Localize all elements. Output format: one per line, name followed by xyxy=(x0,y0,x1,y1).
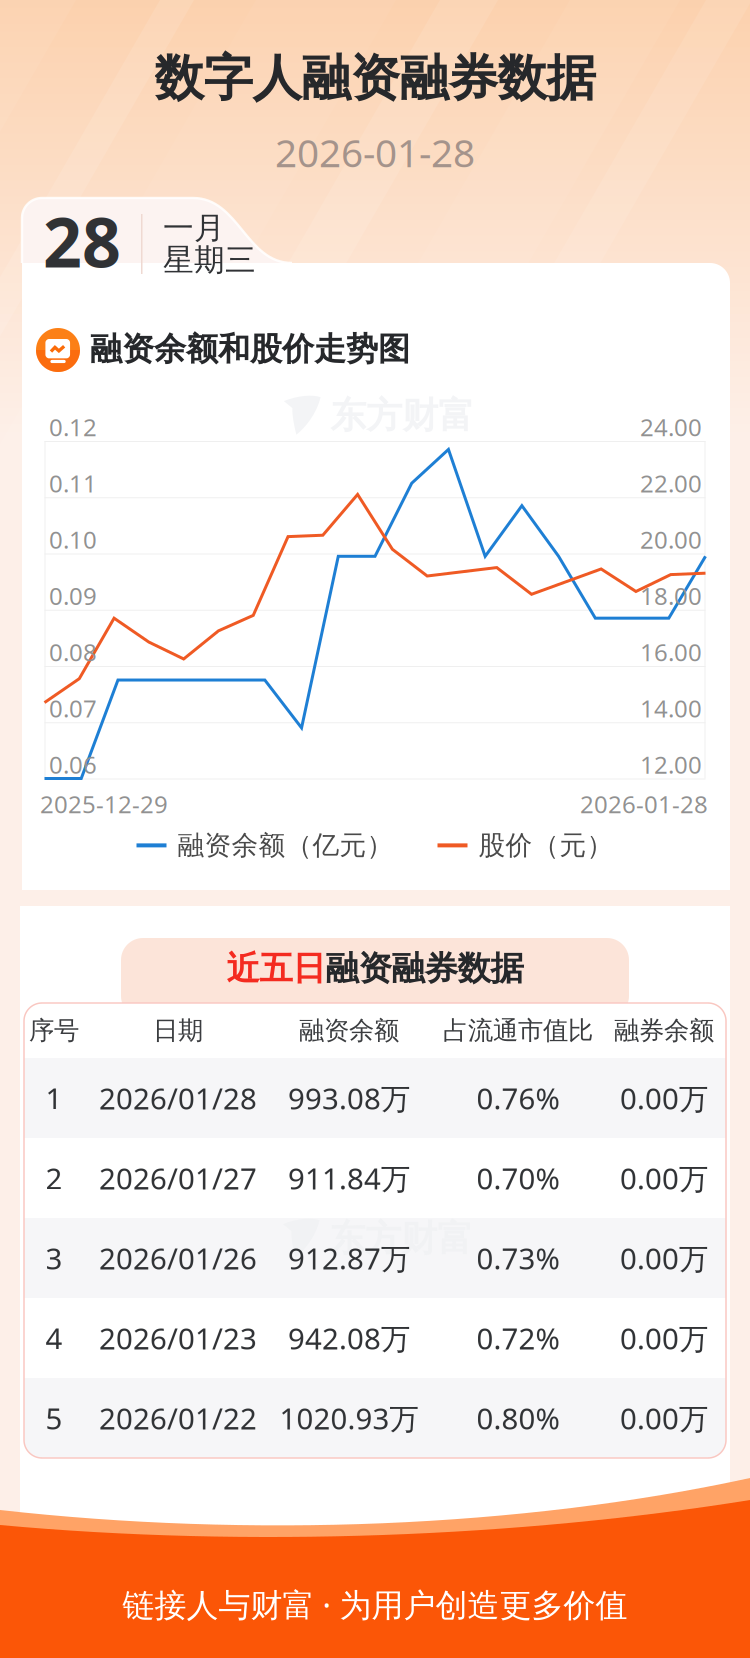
staticText: 0.11 xyxy=(49,467,97,499)
staticText: 0.00万 xyxy=(620,1078,708,1117)
staticText: 0.00万 xyxy=(620,1158,708,1197)
staticText: 911.84万 xyxy=(288,1158,410,1197)
staticText: 股价（元） xyxy=(478,829,613,862)
staticText: 星期三 xyxy=(163,241,256,279)
staticText: 0.00万 xyxy=(620,1238,708,1277)
staticText: 链接人与财富 · 为用户创造更多价值 xyxy=(122,1583,627,1625)
staticText: 4 xyxy=(45,1318,62,1357)
staticText: 0.73% xyxy=(476,1238,559,1277)
staticText: 1 xyxy=(45,1078,62,1117)
staticText: 2026/01/26 xyxy=(99,1238,257,1277)
staticText: 近五日 xyxy=(226,948,325,989)
staticText: 1020.93万 xyxy=(279,1398,418,1437)
staticText: 数字人融资融券数据 xyxy=(154,48,595,109)
staticText: 东方财富 xyxy=(330,393,474,438)
staticText: 0.70% xyxy=(476,1158,559,1197)
staticText: 0.06 xyxy=(49,749,97,780)
staticText: 融券余额 xyxy=(614,1015,714,1046)
staticText: 2026/01/22 xyxy=(99,1398,257,1437)
staticText: 序号 xyxy=(29,1015,79,1046)
staticText: 占流通市值比 xyxy=(443,1015,593,1046)
staticText: 2025-12-29 xyxy=(40,788,168,820)
staticText: 2026/01/27 xyxy=(99,1158,257,1197)
staticText: 0.80% xyxy=(476,1398,559,1437)
staticText: 2026-01-28 xyxy=(580,788,708,820)
staticText: 3 xyxy=(45,1238,62,1277)
staticText: 22.00 xyxy=(640,467,702,499)
staticText: 28 xyxy=(43,196,121,286)
staticText: 东方财富 xyxy=(329,1216,473,1261)
staticText: 18.00 xyxy=(640,580,702,612)
staticText: 0.00万 xyxy=(620,1318,708,1357)
staticText: 12.00 xyxy=(640,749,702,780)
staticText: 912.87万 xyxy=(288,1238,410,1277)
staticText: 0.07 xyxy=(49,692,97,724)
staticText: 2026/01/23 xyxy=(99,1318,257,1357)
staticText: 0.08 xyxy=(49,636,97,668)
staticText: 942.08万 xyxy=(288,1318,410,1357)
staticText: 融资融券数据 xyxy=(325,948,523,989)
staticText: 2026-01-28 xyxy=(275,127,475,178)
staticText: 14.00 xyxy=(640,692,702,724)
staticText: 0.12 xyxy=(49,411,97,443)
staticText: 融资余额和股价走势图 xyxy=(90,329,410,369)
staticText: 24.00 xyxy=(640,411,702,443)
staticText: 2026/01/28 xyxy=(99,1078,257,1117)
staticText: 0.76% xyxy=(476,1078,559,1117)
staticText: 0.00万 xyxy=(620,1398,708,1437)
staticText: 0.09 xyxy=(49,580,97,612)
staticText: 融资余额（亿元） xyxy=(177,829,393,862)
staticText: 融资余额 xyxy=(299,1015,399,1046)
staticText: 一月 xyxy=(163,209,225,247)
staticText: 16.00 xyxy=(640,636,702,668)
staticText: 20.00 xyxy=(640,524,702,555)
staticText: 0.10 xyxy=(49,524,97,555)
staticText: 0.72% xyxy=(476,1318,559,1357)
staticText: 日期 xyxy=(153,1015,203,1046)
staticText: 993.08万 xyxy=(288,1078,410,1117)
staticText: 2 xyxy=(45,1158,62,1197)
staticText: 5 xyxy=(45,1398,62,1437)
